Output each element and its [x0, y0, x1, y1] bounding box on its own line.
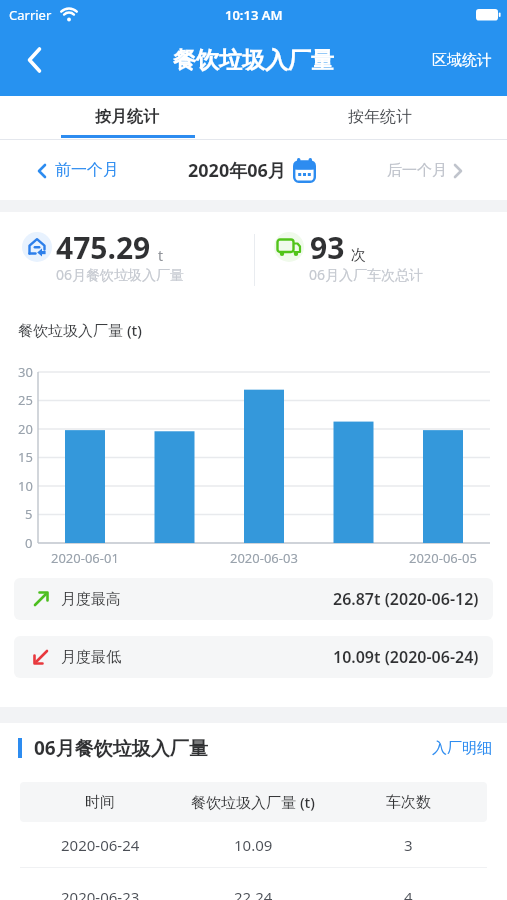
button[interactable]: 按月统计: [0, 96, 253, 137]
staticText: 2020-06-05: [409, 549, 477, 567]
staticText: 3: [404, 835, 413, 855]
staticText: 25: [18, 391, 33, 409]
staticText: 次: [351, 246, 366, 265]
button[interactable]: 区域统计: [417, 30, 507, 90]
staticText: 30: [18, 363, 33, 381]
button[interactable]: 93: [255, 212, 507, 305]
staticText: 4: [404, 887, 413, 900]
staticText: 月度最低: [61, 648, 121, 667]
staticText: 餐饮垃圾入厂量: [173, 46, 334, 75]
staticText: 10.09: [234, 835, 273, 855]
staticText: 2020年06月: [188, 158, 286, 183]
staticText: 2020-06-01: [51, 549, 119, 567]
staticText: 按月统计: [95, 107, 159, 127]
staticText: 车次数: [386, 793, 431, 812]
staticText: 月度最高: [61, 590, 121, 609]
button[interactable]: [0, 30, 70, 90]
staticText: 餐饮垃圾入厂量 (t): [18, 320, 143, 340]
staticText: 10:13 AM: [225, 6, 283, 24]
staticText: 2020-06-03: [230, 549, 298, 567]
staticText: 06月餐饮垃圾入厂量: [56, 265, 185, 284]
staticText: 前一个月: [55, 160, 119, 180]
staticText: 2020-06-24: [61, 835, 140, 855]
button[interactable]: 2020-06-23: [20, 874, 487, 900]
staticText: 5: [25, 505, 33, 523]
button[interactable]: 2020-06-24: [20, 822, 487, 868]
staticText: 06月餐饮垃圾入厂量: [34, 735, 208, 761]
staticText: 2020-06-23: [61, 887, 140, 900]
staticText: 06月入厂车次总计: [309, 265, 424, 284]
button[interactable]: 月度最低: [14, 636, 493, 678]
staticText: 93: [310, 227, 345, 267]
button[interactable]: 入厂明细: [417, 723, 507, 773]
staticText: 区域统计: [432, 51, 492, 70]
button[interactable]: 2020年06月: [180, 140, 326, 200]
staticText: 15: [18, 448, 33, 466]
staticText: 20: [18, 420, 33, 438]
staticText: 26.87t (2020-06-12): [333, 588, 479, 610]
staticText: 10: [18, 477, 33, 495]
button[interactable]: 月度最高: [14, 578, 493, 620]
staticText: Carrier: [9, 6, 52, 24]
staticText: 时间: [85, 793, 115, 812]
staticText: 0: [25, 534, 33, 552]
staticText: 22.24: [234, 887, 273, 900]
staticText: 入厂明细: [432, 739, 492, 758]
staticText: 后一个月: [387, 161, 447, 180]
button[interactable]: 475.29: [0, 212, 253, 305]
staticText: 按年统计: [348, 107, 412, 127]
staticText: 475.29: [56, 227, 151, 267]
button[interactable]: 后一个月: [367, 140, 507, 200]
staticText: 10.09t (2020-06-24): [333, 646, 479, 668]
button[interactable]: 前一个月: [0, 140, 140, 200]
staticText: t: [158, 246, 164, 265]
staticText: 餐饮垃圾入厂量 (t): [191, 792, 316, 812]
button[interactable]: 按年统计: [253, 96, 507, 137]
